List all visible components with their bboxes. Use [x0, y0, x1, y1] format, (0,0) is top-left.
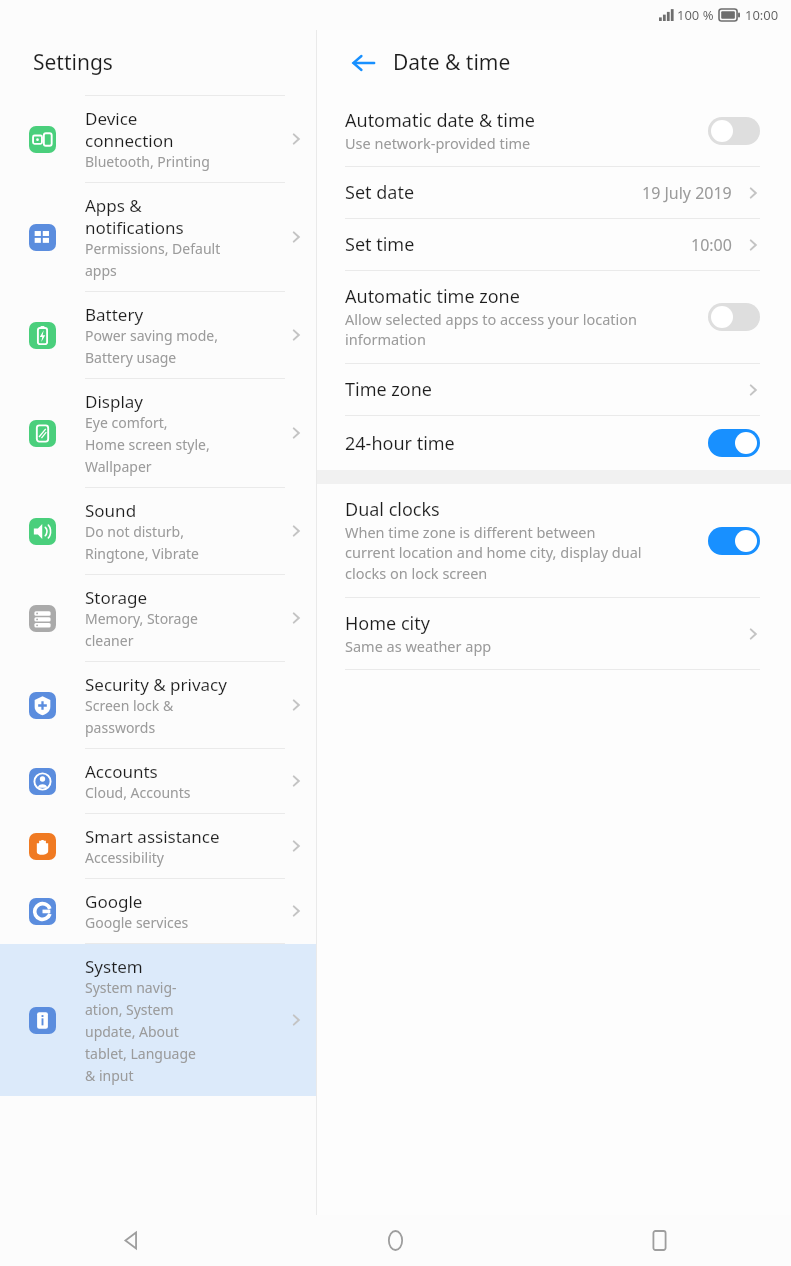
button[interactable]: Dual clocks: [317, 484, 791, 598]
staticText: Storage: [85, 586, 148, 609]
button[interactable]: Toggle on: [708, 429, 760, 457]
staticText: Accessibility: [85, 848, 164, 867]
button[interactable]: Home: [263, 1215, 527, 1266]
staticText: When time zone is different between curr…: [345, 522, 642, 584]
staticText: Use network-provided time: [345, 133, 531, 153]
button[interactable]: Toggle on: [708, 527, 760, 555]
staticText: Apps & notifications: [85, 194, 184, 239]
staticText: Display: [85, 390, 143, 413]
button[interactable]: Toggle off: [708, 117, 760, 145]
staticText: Google services: [85, 913, 189, 932]
button[interactable]: Toggle off: [708, 303, 760, 331]
staticText: Allow selected apps to access your locat…: [345, 309, 638, 350]
staticText: Smart assistance: [85, 825, 220, 848]
staticText: Cloud, Accounts: [85, 783, 191, 802]
button[interactable]: Set date: [317, 167, 791, 219]
button[interactable]: Recents: [527, 1215, 791, 1266]
staticText: Device connection: [85, 107, 174, 152]
staticText: 100 %: [677, 6, 714, 24]
button[interactable]: Device connection: [0, 95, 316, 183]
staticText: Security & privacy: [85, 673, 227, 696]
button[interactable]: Apps & notifications: [0, 183, 316, 292]
staticText: Battery: [85, 303, 144, 326]
button[interactable]: Home city: [317, 598, 791, 670]
button[interactable]: Time zone: [317, 364, 791, 416]
staticText: Memory, Storage cleaner: [85, 609, 198, 650]
staticText: Do not disturb, Ringtone, Vibrate: [85, 522, 199, 563]
staticText: Screen lock & passwords: [85, 696, 174, 737]
staticText: Accounts: [85, 760, 158, 783]
button[interactable]: Battery: [0, 292, 316, 379]
staticText: 24-hour time: [345, 431, 455, 456]
staticText: Permissions, Default apps: [85, 239, 221, 280]
button[interactable]: Smart assistance: [0, 814, 316, 879]
button[interactable]: Google: [0, 879, 316, 944]
staticText: Home city: [345, 611, 430, 636]
staticText: Automatic date & time: [345, 108, 535, 133]
staticText: Sound: [85, 499, 137, 522]
button[interactable]: Display: [0, 379, 316, 488]
staticText: Power saving mode, Battery usage: [85, 326, 218, 367]
staticText: Set time: [345, 232, 415, 257]
staticText: Same as weather app: [345, 636, 492, 656]
staticText: Set date: [345, 180, 415, 205]
button[interactable]: Sound: [0, 488, 316, 575]
staticText: Time zone: [345, 377, 432, 402]
staticText: 19 July 2019: [642, 182, 732, 204]
button[interactable]: Automatic date & time: [317, 95, 791, 167]
staticText: Date & time: [393, 48, 511, 77]
button[interactable]: Back: [0, 1215, 263, 1266]
staticText: 10:00: [745, 6, 779, 24]
button[interactable]: 24-hour time: [317, 416, 791, 470]
staticText: Settings: [33, 48, 113, 77]
button[interactable]: Accounts: [0, 749, 316, 814]
button[interactable]: System: [0, 944, 316, 1096]
staticText: 10:00: [691, 234, 732, 256]
button[interactable]: Set time: [317, 219, 791, 271]
staticText: Automatic time zone: [345, 284, 520, 309]
staticText: System: [85, 955, 143, 978]
staticText: Google: [85, 890, 143, 913]
button[interactable]: Security & privacy: [0, 662, 316, 749]
staticText: Dual clocks: [345, 497, 440, 522]
button[interactable]: Storage: [0, 575, 316, 662]
staticText: Bluetooth, Printing: [85, 152, 210, 171]
staticText: Eye comfort, Home screen style, Wallpape…: [85, 413, 210, 476]
staticText: System navig- ation, System update, Abou…: [85, 978, 196, 1085]
button[interactable]: Back: [341, 41, 385, 85]
button[interactable]: Automatic time zone: [317, 271, 791, 364]
